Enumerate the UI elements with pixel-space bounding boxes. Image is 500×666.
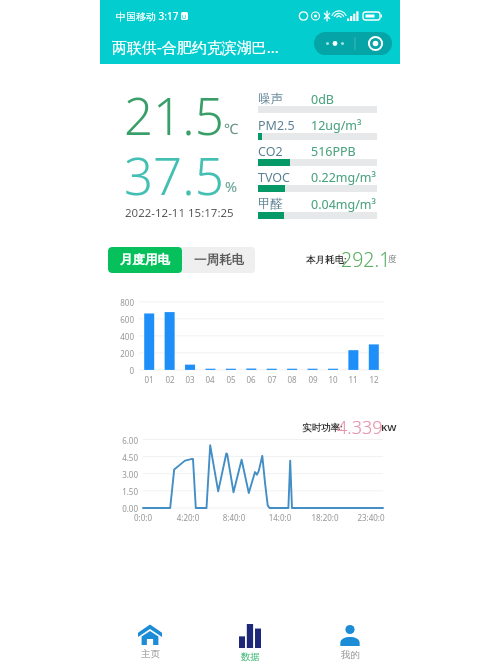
staticText: CO2: [258, 143, 283, 160]
staticText: 07: [262, 374, 282, 385]
staticText: 6.00: [98, 435, 138, 446]
staticText: 中国移动 3:17: [116, 9, 179, 23]
staticText: KW: [381, 421, 397, 434]
button[interactable]: 主页: [120, 620, 180, 660]
button[interactable]: More options and close: [314, 32, 392, 55]
staticText: 0dB: [311, 91, 334, 108]
staticText: 800: [101, 297, 134, 308]
staticText: 37.5: [124, 140, 224, 209]
staticText: 23:40:0: [355, 512, 387, 523]
staticText: 噪声: [258, 91, 283, 107]
button[interactable]: 月度用电: [108, 247, 182, 273]
staticText: 11: [343, 374, 363, 385]
staticText: 3.00: [98, 469, 138, 480]
staticText: 实时功率:: [302, 421, 343, 434]
staticText: 09: [303, 374, 323, 385]
staticText: 4.339: [337, 415, 383, 440]
staticText: 600: [101, 314, 134, 325]
button[interactable]: 一周耗电: [182, 247, 255, 273]
staticText: 18:20:0: [309, 512, 341, 523]
button[interactable]: 我的: [320, 620, 380, 661]
staticText: 08: [282, 374, 302, 385]
staticText: 2022-12-11 15:17:25: [125, 205, 234, 221]
staticText: 8:40:0: [218, 512, 250, 523]
staticText: 1.50: [98, 486, 138, 497]
staticText: 0.00: [98, 503, 138, 514]
staticText: 甲醛: [258, 196, 283, 212]
staticText: 292.1: [341, 246, 391, 273]
staticText: 一周耗电: [194, 252, 244, 268]
button[interactable]: 数据: [220, 620, 280, 663]
staticText: 两联供-合肥约克滨湖巴...: [112, 37, 279, 57]
staticText: 主页: [141, 648, 160, 660]
staticText: 200: [101, 348, 134, 359]
staticText: 01: [139, 374, 159, 385]
staticText: U: [182, 13, 187, 20]
staticText: 0: [101, 365, 134, 376]
staticText: 12ug/m³: [311, 117, 362, 134]
staticText: 度: [388, 254, 397, 265]
staticText: ℃: [224, 118, 239, 138]
staticText: 516PPB: [311, 143, 356, 160]
staticText: 月度用电: [120, 252, 170, 268]
staticText: 02: [160, 374, 180, 385]
staticText: 06: [241, 374, 261, 385]
staticText: 14:0:0: [264, 512, 296, 523]
staticText: 05: [221, 374, 241, 385]
staticText: 4:20:0: [172, 512, 204, 523]
staticText: 12: [364, 374, 384, 385]
staticText: 0.04mg/m³: [311, 196, 376, 213]
staticText: PM2.5: [258, 117, 295, 134]
staticText: 400: [101, 331, 134, 342]
staticText: 数据: [241, 651, 260, 663]
staticText: 0:0:0: [127, 512, 159, 523]
staticText: 03: [180, 374, 200, 385]
staticText: 0.22mg/m³: [311, 169, 376, 186]
staticText: 4.50: [98, 452, 138, 463]
staticText: 10: [323, 374, 343, 385]
staticText: %: [225, 176, 238, 196]
staticText: 04: [200, 374, 220, 385]
staticText: 我的: [341, 649, 360, 661]
staticText: 21.5: [124, 80, 224, 149]
staticText: TVOC: [258, 169, 290, 186]
staticText: 本月耗电:: [306, 253, 347, 266]
